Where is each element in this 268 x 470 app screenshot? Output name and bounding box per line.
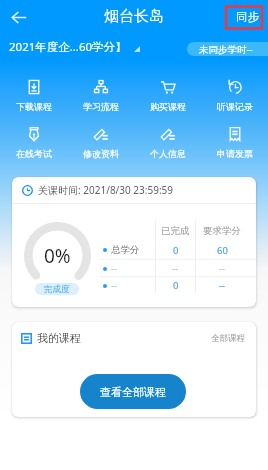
- button[interactable]: 申请发票: [201, 120, 268, 167]
- staticText: --: [219, 279, 226, 292]
- staticText: 关课时间: 2021/8/30 23:59:59: [38, 183, 174, 197]
- staticText: --: [111, 279, 118, 292]
- button[interactable]: 在线考试: [0, 120, 67, 167]
- staticText: --: [111, 262, 118, 275]
- staticText: 下载课程: [16, 101, 52, 112]
- button[interactable]: 购买课程: [134, 73, 201, 120]
- staticText: 购买课程: [150, 101, 186, 112]
- staticText: 学习流程: [83, 101, 119, 112]
- button[interactable]: 下载课程: [0, 73, 67, 120]
- button[interactable]: 查看全部课程: [80, 374, 186, 409]
- staticText: 0: [173, 244, 179, 257]
- button[interactable]: 全部课程: [211, 333, 245, 344]
- staticText: 未同步学时--: [199, 43, 253, 56]
- staticText: 要求学分: [203, 225, 241, 237]
- staticText: 已完成: [161, 225, 190, 237]
- staticText: --: [219, 262, 226, 275]
- button[interactable]: 个人信息: [134, 120, 201, 167]
- staticText: 全部课程: [211, 333, 245, 344]
- staticText: 查看全部课程: [100, 385, 166, 399]
- button[interactable]: Back: [6, 5, 30, 29]
- button[interactable]: 学习流程: [67, 73, 134, 120]
- staticText: 0%: [44, 243, 71, 269]
- staticText: --: [172, 262, 179, 275]
- staticText: 申请发票: [217, 148, 253, 159]
- button[interactable]: 未同步学时--: [187, 42, 268, 56]
- staticText: 2021年度企…60学分】: [9, 39, 127, 55]
- button[interactable]: 同步: [232, 6, 263, 28]
- staticText: 烟台长岛: [104, 7, 164, 26]
- staticText: 60: [217, 244, 228, 257]
- button[interactable]: 修改资料: [67, 120, 134, 167]
- button[interactable]: 2021年度企…60学分】: [9, 39, 140, 55]
- staticText: 同步: [236, 10, 259, 24]
- staticText: 总学分: [111, 244, 140, 256]
- staticText: 我的课程: [37, 331, 81, 345]
- staticText: 听课记录: [217, 101, 253, 112]
- staticText: 修改资料: [83, 148, 119, 159]
- button[interactable]: 听课记录: [201, 73, 268, 120]
- staticText: 在线考试: [16, 148, 52, 159]
- staticText: 0: [173, 279, 179, 292]
- staticText: 个人信息: [150, 148, 186, 159]
- staticText: 完成度: [44, 284, 70, 295]
